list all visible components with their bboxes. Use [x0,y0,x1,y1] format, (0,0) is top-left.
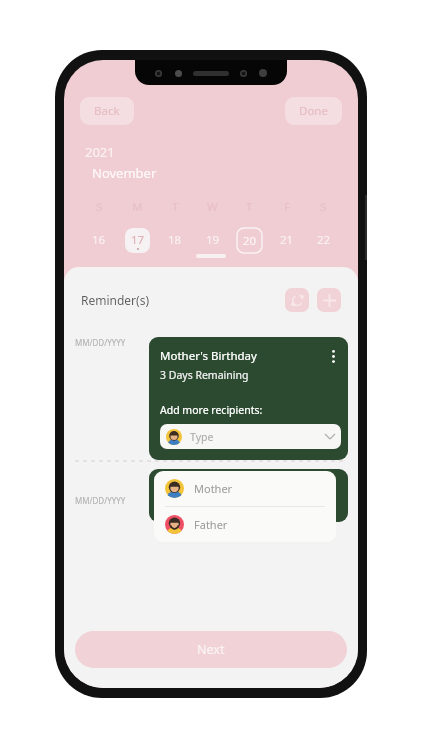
staticText: F [284,199,290,215]
staticText: S [96,199,103,215]
staticText: November [92,164,157,182]
staticText: 3 Days Remaining [160,368,249,382]
button[interactable]: More options [325,348,341,364]
staticText: Reminder(s) [81,292,150,308]
staticText: T [246,199,253,215]
staticText: MM/DD/YYYY [75,337,126,348]
button[interactable]: Father [154,507,336,542]
button[interactable]: Back [80,97,134,125]
staticText: 2021 [85,143,115,161]
button[interactable]: 20 [231,226,268,254]
staticText: 5 Days Remaining [160,499,249,513]
staticText: 21 [280,232,294,248]
staticText: Mother [194,481,233,496]
button[interactable]: 21 [268,226,305,254]
staticText: Done [299,103,328,119]
button[interactable]: Refresh [285,288,309,312]
staticText: Back [94,103,120,119]
staticText: S [320,199,327,215]
button[interactable]: 17 [118,226,156,254]
staticText: MM/DD/YYYY [75,495,126,506]
staticText: 17 [131,232,145,248]
staticText: Father [194,517,228,532]
button[interactable]: 5 Days Remaining [149,469,348,522]
staticText: 16 [92,232,106,248]
staticText: T [172,199,179,215]
staticText: M [132,199,143,215]
button[interactable]: 22 [305,226,342,254]
button[interactable]: Mother's Birthday [149,337,348,460]
button[interactable]: Add reminder [317,288,341,312]
staticText: 22 [317,232,331,248]
staticText: 20 [243,233,257,249]
button[interactable]: Mother [154,471,336,506]
staticText: 18 [168,232,182,248]
button[interactable]: 16 [80,226,118,254]
button[interactable]: Type [160,424,341,449]
button[interactable]: Done [285,97,342,125]
staticText: Mother's Birthday [160,348,257,364]
staticText: W [207,199,218,215]
staticText: Type [190,430,214,444]
staticText: 19 [206,232,220,248]
button[interactable]: 19 [194,226,231,254]
button[interactable]: Next [75,631,347,668]
staticText: Next [197,641,225,658]
button[interactable]: 18 [156,226,194,254]
staticText: Add more recipients: [160,403,263,417]
